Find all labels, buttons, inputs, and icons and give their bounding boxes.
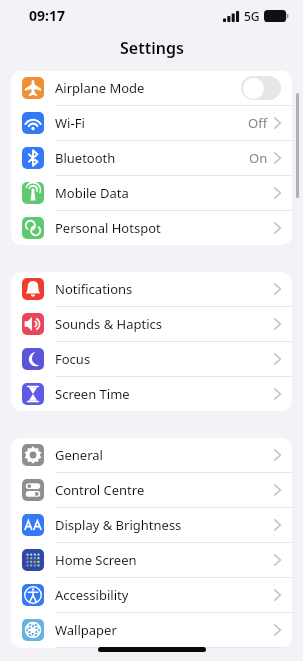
button[interactable]: Accessibility [11,578,292,613]
button[interactable]: Sounds & Haptics [11,307,292,342]
button[interactable]: Wi-Fi [11,106,292,141]
staticText: Personal Hotspot [55,219,274,237]
staticText: Off [248,114,268,132]
button[interactable]: Home Screen [11,543,292,578]
staticText: Wallpaper [55,621,274,639]
staticText: Settings [120,37,184,59]
button[interactable]: Personal Hotspot [11,211,292,245]
staticText: On [249,149,268,167]
staticText: Mobile Data [55,184,274,202]
staticText: Wi-Fi [55,114,248,132]
button[interactable]: Control Centre [11,473,292,508]
button[interactable]: Focus [11,342,292,377]
staticText: Airplane Mode [55,79,241,97]
button[interactable]: Wallpaper [11,613,292,648]
staticText: Accessibility [55,586,274,604]
button[interactable]: Airplane Mode toggle [241,76,281,100]
button[interactable]: Mobile Data [11,176,292,211]
staticText: Focus [55,350,274,368]
button[interactable]: Airplane Mode [11,71,292,106]
staticText: General [55,446,274,464]
button[interactable]: Display & Brightness [11,508,292,543]
staticText: Notifications [55,280,274,298]
button[interactable]: Notifications [11,272,292,307]
staticText: 5G [244,8,260,24]
button[interactable]: Bluetooth [11,141,292,176]
staticText: Sounds & Haptics [55,315,274,333]
staticText: Display & Brightness [55,516,274,534]
staticText: Bluetooth [55,149,249,167]
staticText: Home Screen [55,551,274,569]
staticText: Control Centre [55,481,274,499]
button[interactable]: General [11,438,292,473]
staticText: 09:17 [29,6,65,25]
button[interactable]: Screen Time [11,377,292,411]
staticText: Screen Time [55,385,274,403]
